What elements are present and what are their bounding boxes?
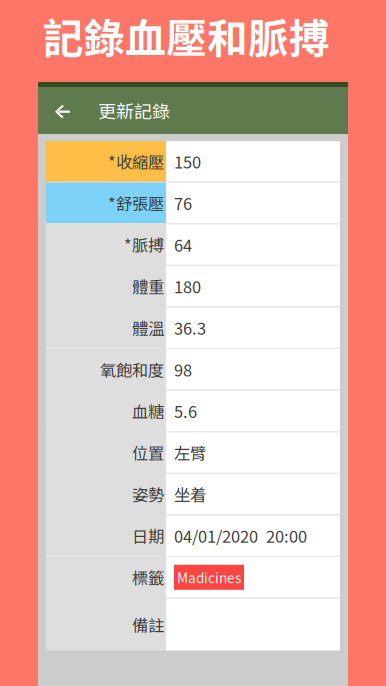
staticText: 標籤 — [132, 565, 164, 589]
button[interactable]: 姿勢 — [46, 474, 340, 514]
button[interactable]: 日期 — [46, 515, 340, 556]
button[interactable]: 體溫 — [46, 307, 340, 348]
staticText: 記錄血壓和脈搏 — [43, 6, 330, 65]
staticText: 64 — [174, 233, 192, 256]
button[interactable]: 備註 — [46, 599, 340, 651]
staticText: 日期 — [132, 524, 164, 547]
staticText: 體溫 — [132, 316, 164, 339]
staticText: 76 — [174, 191, 192, 215]
staticText: 5.6 — [174, 399, 197, 423]
staticText: 36.3 — [174, 316, 206, 339]
button[interactable]: 體重 — [46, 266, 340, 306]
staticText: 04/01/2020 20:00 — [174, 524, 307, 547]
staticText: 血糖 — [132, 399, 164, 423]
staticText: 98 — [174, 357, 192, 381]
button[interactable]: 氧飽和度 — [46, 349, 340, 390]
staticText: 體重 — [132, 274, 164, 298]
staticText: 姿勢 — [132, 482, 164, 506]
staticText: 180 — [174, 274, 201, 298]
button[interactable]: 血糖 — [46, 391, 340, 431]
staticText: Madicines — [177, 567, 241, 587]
staticText: 氧飽和度 — [100, 357, 164, 381]
staticText: *脈搏 — [124, 233, 164, 256]
staticText: 位置 — [132, 441, 164, 464]
button[interactable]: 位置 — [46, 432, 340, 473]
staticText: *舒張壓 — [108, 191, 164, 215]
staticText: *收縮壓 — [108, 149, 164, 173]
button[interactable]: *舒張壓 — [46, 183, 340, 223]
button[interactable]: *脈搏 — [46, 224, 340, 265]
staticText: 150 — [174, 149, 201, 173]
staticText: 左臂 — [174, 441, 206, 464]
button[interactable]: 更新記錄 — [38, 87, 348, 134]
staticText: 備註 — [132, 613, 164, 636]
button[interactable]: 標籤 — [46, 557, 340, 598]
button[interactable]: *收縮壓 — [46, 141, 340, 182]
staticText: 更新記錄 — [98, 97, 170, 124]
button[interactable]: Madicines — [174, 565, 244, 590]
staticText: 坐着 — [174, 482, 206, 506]
